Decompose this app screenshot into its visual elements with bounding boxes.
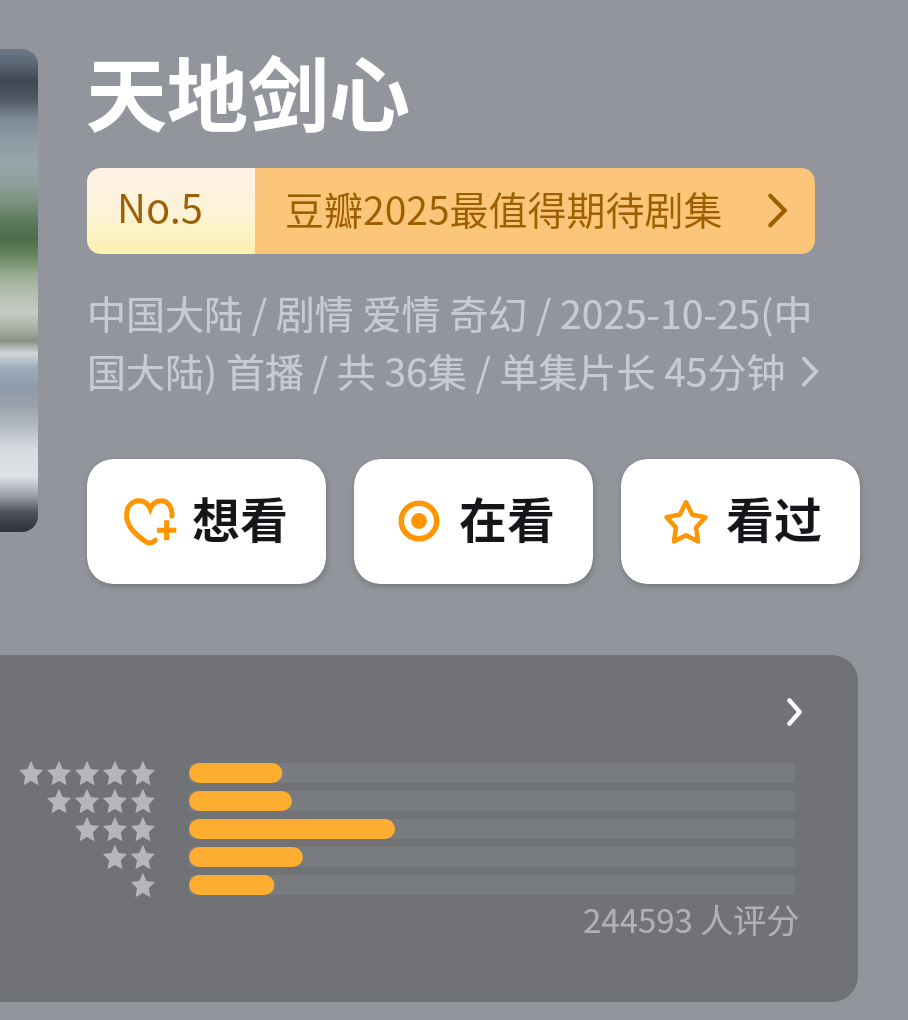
staticText: No.5	[117, 177, 204, 235]
button[interactable]: 在看	[354, 459, 593, 584]
button[interactable]: 想看	[87, 459, 326, 584]
staticText: 看过	[726, 482, 823, 552]
button[interactable]: 中国大陆 / 剧情 爱情 奇幻 / 2025-10-25(中国大陆) 首播 / …	[87, 284, 835, 404]
staticText: 在看	[459, 482, 556, 552]
button[interactable]: No.5	[87, 168, 815, 254]
button[interactable]: 看过	[621, 459, 860, 584]
button[interactable]: 244593 人评分	[0, 655, 858, 1002]
staticText: 244593 人评分	[583, 895, 800, 943]
staticText: 豆瓣2025最值得期待剧集	[285, 180, 723, 236]
staticText: 想看	[192, 482, 289, 552]
staticText: 天地剑心	[86, 31, 411, 148]
staticText: 中国大陆 / 剧情 爱情 奇幻 / 2025-10-25(中国大陆) 首播 / …	[87, 284, 835, 399]
